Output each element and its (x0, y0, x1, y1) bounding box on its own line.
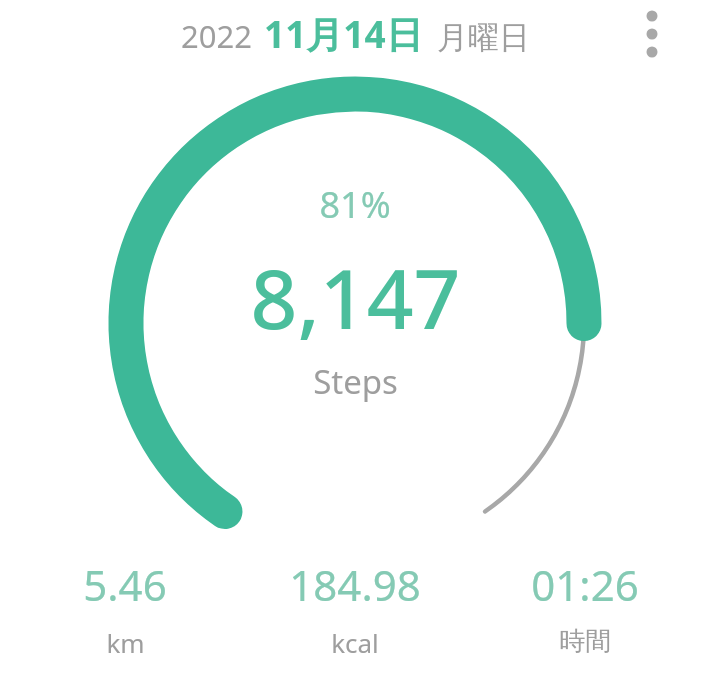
button[interactable]: 5.46 (20, 556, 230, 660)
staticText: 184.98 (289, 556, 421, 613)
staticText: 01:26 (531, 556, 639, 613)
button[interactable]: 2022 (181, 8, 530, 59)
button[interactable]: 01:26 (480, 556, 690, 658)
staticText: 月曜日 (437, 18, 530, 57)
staticText: 11月14日 (264, 8, 423, 59)
staticText: 8,147 (250, 241, 461, 353)
staticText: 2022 (181, 15, 252, 57)
button[interactable]: 184.98 (250, 556, 460, 660)
button[interactable]: More options (630, 2, 674, 68)
button[interactable]: 81% (155, 180, 555, 404)
staticText: 時間 (559, 625, 611, 658)
staticText: 5.46 (83, 556, 167, 613)
staticText: km (106, 625, 145, 660)
staticText: 81% (319, 180, 391, 229)
staticText: kcal (331, 625, 379, 660)
staticText: Steps (313, 359, 398, 404)
